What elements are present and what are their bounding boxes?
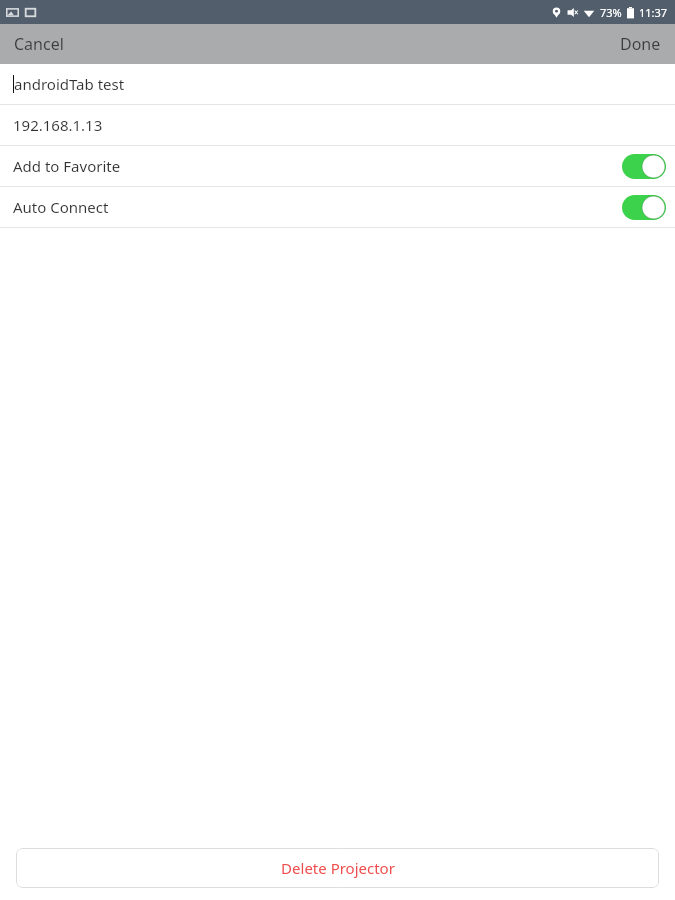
staticText: 192.168.1.13 <box>13 115 103 135</box>
button[interactable]: Add to Favorite <box>0 146 675 186</box>
button[interactable]: Delete Projector <box>16 848 659 888</box>
staticText: Delete Projector <box>281 858 395 878</box>
staticText: Cancel <box>14 33 64 55</box>
staticText: androidTab test <box>14 74 125 94</box>
button[interactable]: Toggle on <box>622 195 666 220</box>
button[interactable]: Toggle on <box>622 154 666 179</box>
button[interactable]: Cancel <box>0 25 78 63</box>
staticText: Add to Favorite <box>13 156 121 176</box>
staticText: 11:37 <box>639 5 668 20</box>
staticText: 73% <box>600 5 622 20</box>
button[interactable]: Auto Connect <box>0 187 675 227</box>
staticText: Done <box>620 33 661 55</box>
button[interactable]: androidTab test <box>0 64 675 104</box>
button[interactable]: Done <box>606 25 675 63</box>
button[interactable]: 192.168.1.13 <box>0 105 675 145</box>
staticText: Auto Connect <box>13 197 109 217</box>
